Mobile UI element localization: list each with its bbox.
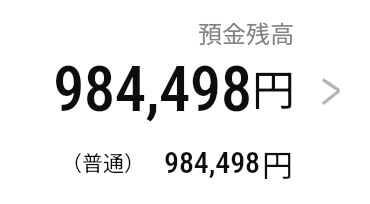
staticText: 984,498 — [53, 53, 252, 125]
staticText: 預金残高 — [198, 15, 294, 50]
staticText: 円 — [252, 56, 295, 118]
staticText: 円 — [262, 141, 293, 186]
button[interactable]: （普通） — [0, 138, 370, 184]
staticText: 984,498 — [164, 145, 260, 180]
button[interactable]: 口座詳細を開く — [310, 70, 354, 114]
staticText: （普通） — [61, 147, 145, 177]
button[interactable]: 984,498 — [0, 50, 370, 122]
